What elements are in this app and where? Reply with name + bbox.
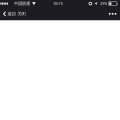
staticText: 09:19: [53, 1, 62, 6]
button[interactable]: 返回: [0, 7, 16, 20]
button[interactable]: More: [105, 7, 120, 20]
staticText: 关闭: [17, 11, 25, 17]
staticText: 返回: [7, 11, 15, 17]
staticText: 中国联通: [14, 1, 30, 6]
button[interactable]: 关闭: [16, 7, 27, 20]
staticText: 29%: [100, 1, 107, 6]
